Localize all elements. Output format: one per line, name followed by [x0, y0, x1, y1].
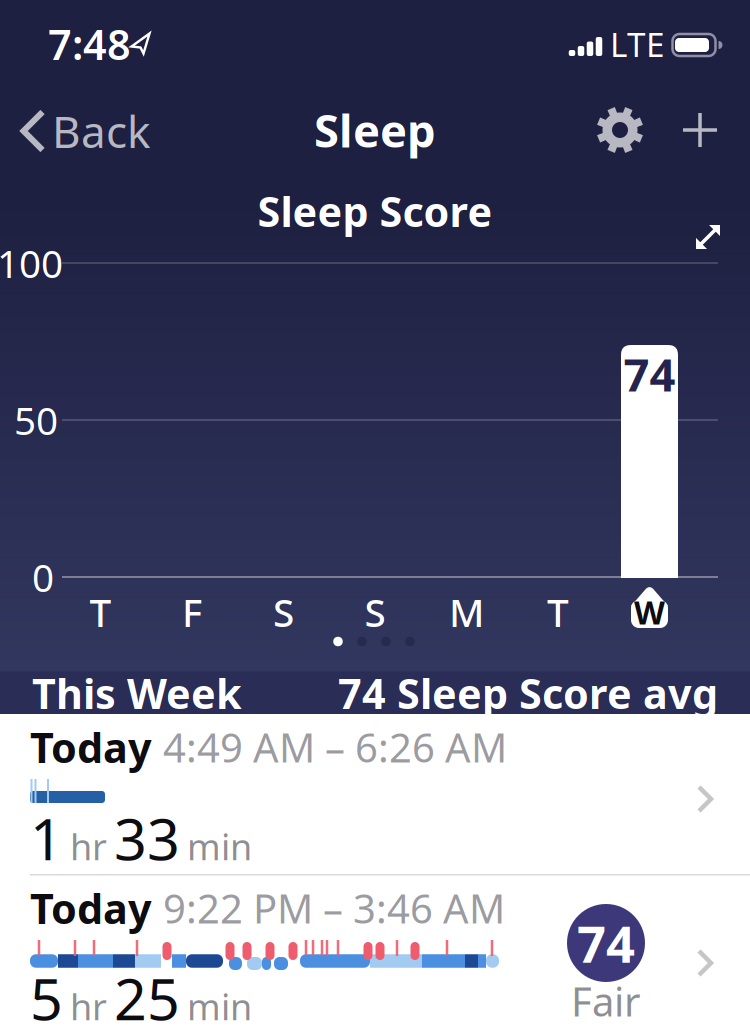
staticText: hr: [70, 982, 107, 1030]
staticText: min: [187, 982, 252, 1030]
button[interactable]: Back: [0, 95, 170, 167]
staticText: 74: [577, 909, 635, 977]
staticText: 74: [623, 344, 675, 404]
staticText: Fair: [571, 974, 641, 1027]
staticText: Sleep: [314, 100, 436, 160]
staticText: This Week: [32, 666, 242, 720]
button[interactable]: [590, 100, 650, 160]
staticText: S: [273, 586, 294, 638]
staticText: 1: [30, 800, 63, 876]
staticText: 25: [114, 960, 180, 1035]
staticText: 4:49 AM – 6:26 AM: [163, 720, 507, 773]
staticText: hr: [70, 822, 107, 870]
staticText: 74 Sleep Score avg: [338, 666, 718, 720]
button[interactable]: [681, 210, 735, 264]
button[interactable]: 74: [621, 345, 678, 578]
staticText: 100: [0, 237, 63, 289]
staticText: F: [182, 586, 202, 638]
staticText: T: [89, 586, 111, 638]
staticText: Back: [52, 102, 150, 160]
staticText: Today: [30, 720, 152, 774]
button[interactable]: [670, 100, 730, 160]
staticText: Sleep Score: [257, 184, 492, 238]
staticText: 0: [32, 551, 54, 603]
staticText: 33: [114, 800, 180, 876]
staticText: 9:22 PM – 3:46 AM: [163, 881, 505, 934]
staticText: 5: [30, 960, 63, 1035]
staticText: min: [187, 822, 252, 870]
staticText: 50: [14, 394, 58, 446]
button[interactable]: Today: [0, 714, 750, 874]
staticText: 7:48: [48, 17, 131, 71]
staticText: M: [449, 586, 484, 638]
staticText: Today: [30, 881, 152, 935]
staticText: LTE: [610, 22, 665, 66]
staticText: W: [634, 591, 665, 633]
staticText: S: [364, 586, 385, 638]
staticText: T: [547, 586, 569, 638]
button[interactable]: Today: [0, 874, 750, 1035]
